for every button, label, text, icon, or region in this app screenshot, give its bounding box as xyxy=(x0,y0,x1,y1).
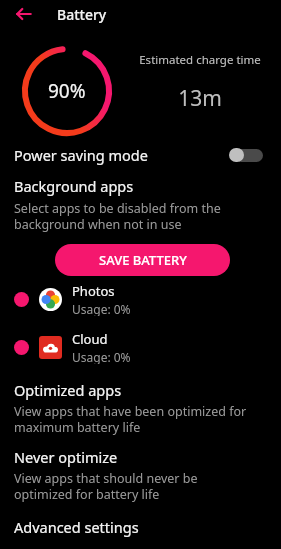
staticText: Select apps to be disabled from the back… xyxy=(14,200,221,232)
staticText: Usage: 0% xyxy=(72,349,131,364)
staticText: 90% xyxy=(48,78,86,104)
staticText: Never optimize xyxy=(14,447,118,467)
button[interactable]: Photos xyxy=(0,282,281,316)
staticText: Photos xyxy=(72,282,115,300)
button[interactable]: Advanced settings xyxy=(0,515,281,543)
staticText: 13m xyxy=(178,84,222,113)
staticText: Power saving mode xyxy=(14,145,229,165)
button[interactable]: Back xyxy=(10,0,38,28)
staticText: SAVE BATTERY xyxy=(99,251,187,269)
staticText: Background apps xyxy=(14,176,134,196)
button[interactable]: SAVE BATTERY xyxy=(55,244,230,276)
staticText: Battery xyxy=(57,5,107,24)
button[interactable]: Cloud xyxy=(0,330,281,364)
staticText: Cloud xyxy=(72,330,108,348)
staticText: Advanced settings xyxy=(14,517,139,537)
button[interactable]: Optimized apps xyxy=(0,380,281,435)
staticText: View apps that should never be optimized… xyxy=(14,470,198,502)
staticText: Usage: 0% xyxy=(72,301,131,316)
staticText: Optimized apps xyxy=(14,380,122,400)
button[interactable]: Never optimize xyxy=(0,447,281,502)
staticText: Estimated charge time xyxy=(139,52,261,68)
staticText: View apps that have been optimized for m… xyxy=(14,403,247,435)
button[interactable]: Power saving mode xyxy=(0,138,281,172)
